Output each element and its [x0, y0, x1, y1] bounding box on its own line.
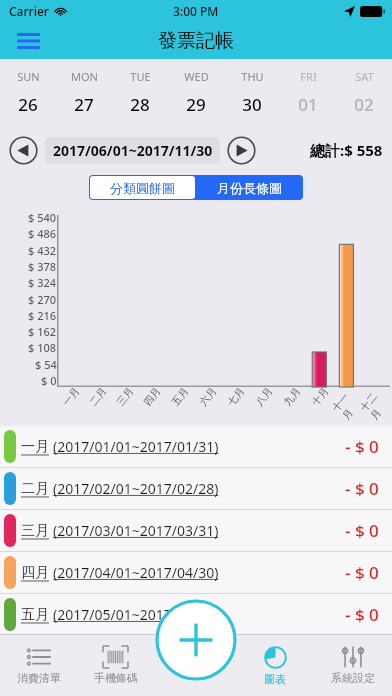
- staticText: 總計:$ 558: [310, 140, 383, 160]
- staticText: (2017/01/01~2017/01/31): [53, 437, 219, 456]
- staticText: WED: [184, 69, 209, 84]
- staticText: $ 216: [28, 308, 57, 323]
- staticText: 五月: [169, 385, 191, 408]
- button[interactable]: Add: [155, 599, 237, 681]
- staticText: (2017/05/01~2017/05/31): [53, 605, 219, 624]
- staticText: 十二月: [357, 384, 392, 422]
- staticText: SAT: [355, 69, 374, 84]
- staticText: 五月: [21, 606, 49, 624]
- staticText: 十一月: [329, 384, 367, 422]
- staticText: 28: [130, 93, 150, 116]
- staticText: THU: [241, 69, 264, 84]
- staticText: - $ 0: [345, 519, 379, 542]
- staticText: 圖表: [264, 672, 286, 686]
- staticText: (2017/04/01~2017/04/30): [53, 563, 219, 582]
- staticText: $ 540: [28, 210, 57, 225]
- staticText: SUN: [17, 69, 40, 84]
- staticText: $ 486: [28, 226, 57, 241]
- staticText: 二月: [87, 385, 109, 408]
- staticText: (2017/03/01~2017/03/31): [53, 521, 219, 540]
- button[interactable]: 四月: [0, 552, 392, 593]
- staticText: 29: [186, 93, 206, 116]
- staticText: 一月: [21, 438, 49, 456]
- staticText: Carrier: [9, 3, 49, 19]
- button[interactable]: 五月: [0, 594, 392, 635]
- staticText: $ 108: [28, 340, 57, 355]
- staticText: 26: [18, 93, 38, 116]
- staticText: $ 324: [28, 275, 57, 290]
- staticText: 02: [354, 93, 374, 116]
- staticText: 月份長條圖: [217, 180, 282, 196]
- staticText: 一月: [60, 385, 82, 408]
- button[interactable]: 月份長條圖: [196, 175, 303, 200]
- staticText: - $ 0: [345, 603, 379, 626]
- staticText: 27: [74, 93, 94, 116]
- staticText: 四月: [21, 564, 49, 582]
- staticText: 消費清單: [17, 671, 61, 685]
- staticText: $ 270: [28, 292, 57, 307]
- button[interactable]: 三月: [0, 510, 392, 551]
- staticText: 2017/06/01~2017/11/30: [53, 141, 213, 160]
- staticText: $ 432: [28, 243, 57, 258]
- staticText: 八月: [253, 385, 275, 408]
- button[interactable]: 手機條碼: [77, 635, 154, 696]
- staticText: - $ 0: [345, 477, 379, 500]
- staticText: 七月: [225, 385, 247, 408]
- staticText: 九月: [281, 385, 303, 408]
- staticText: 三月: [114, 385, 136, 408]
- staticText: 01: [298, 93, 318, 116]
- staticText: 手機條碼: [94, 671, 138, 685]
- staticText: $ 162: [28, 324, 57, 339]
- button[interactable]: 系統設定: [314, 635, 392, 696]
- staticText: $ 378: [28, 259, 57, 274]
- staticText: 發票記帳: [158, 29, 234, 53]
- button[interactable]: Menu: [10, 23, 46, 59]
- staticText: 三月: [21, 522, 49, 540]
- button[interactable]: 一月: [0, 426, 392, 467]
- button[interactable]: 分類圓餅圖: [90, 176, 195, 199]
- staticText: 分類圓餅圖: [110, 180, 175, 196]
- staticText: - $ 0: [345, 435, 379, 458]
- button[interactable]: 二月: [0, 468, 392, 509]
- staticText: 二月: [21, 480, 49, 498]
- staticText: 十月: [309, 385, 331, 408]
- button[interactable]: Next range: [227, 136, 256, 165]
- button[interactable]: 消費清單: [0, 635, 77, 696]
- button[interactable]: 圖表: [236, 635, 314, 696]
- staticText: $ 0: [41, 373, 57, 388]
- staticText: 六月: [197, 385, 219, 408]
- button[interactable]: 2017/06/01~2017/11/30: [45, 137, 220, 164]
- staticText: 30: [242, 93, 262, 116]
- button[interactable]: Previous range: [9, 136, 38, 165]
- staticText: FRI: [300, 69, 317, 84]
- staticText: (2017/02/01~2017/02/28): [53, 479, 219, 498]
- staticText: TUE: [130, 69, 151, 84]
- staticText: MON: [71, 69, 98, 84]
- staticText: 四月: [141, 385, 163, 408]
- staticText: $ 54: [35, 357, 57, 372]
- staticText: 系統設定: [331, 671, 375, 685]
- staticText: 3:00 PM: [173, 3, 219, 19]
- staticText: - $ 0: [345, 561, 379, 584]
